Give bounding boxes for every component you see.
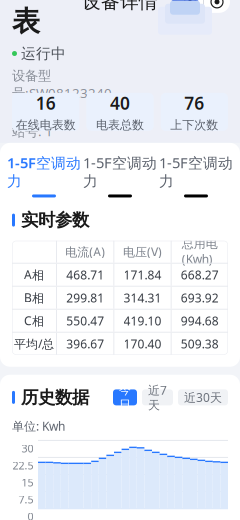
staticText: 上下次数 [170,117,218,132]
staticText: 三相电表 [12,0,96,38]
staticText: 7.5 [18,492,33,507]
staticText: 实时参数 [21,209,89,231]
button[interactable]: 16 [12,93,79,131]
staticText: 299.81 [66,290,104,306]
button[interactable]: 1-5F空调动力 [158,153,234,197]
staticText: 单位: Kwh [12,418,65,434]
staticText: B相 [24,290,44,306]
staticText: 40 [110,91,130,114]
staticText: 171.84 [123,267,161,283]
staticText: 总用电(Kwh) [182,236,218,267]
staticText: 15 [21,475,33,490]
button[interactable]: 近7天 [142,389,173,405]
staticText: 76 [184,91,204,114]
button[interactable]: 近30天 [178,389,228,405]
button[interactable]: 今日 [113,389,137,405]
staticText: 668.27 [181,267,219,283]
staticText: 设备详情 [82,0,158,13]
staticText: 994.68 [181,313,219,329]
staticText: 站号: 1 [12,122,53,140]
staticText: 运行中 [21,44,66,62]
button[interactable]: 1-5F空调动力 [82,153,158,197]
staticText: 历史数据 [21,387,89,408]
staticText: 22.5 [12,458,33,473]
staticText: 693.92 [181,290,219,306]
staticText: 16 [36,91,56,114]
staticText: 509.38 [181,336,219,352]
staticText: A相 [24,267,44,283]
button[interactable]: 40 [86,93,154,131]
button[interactable]: 1-5F空调动力 [6,153,82,197]
staticText: 419.10 [123,313,161,329]
staticText: C相 [24,313,44,329]
button[interactable]: 76 [161,93,228,131]
staticText: 电表总数 [96,117,144,132]
staticText: 550.47 [66,313,104,329]
staticText: 电流(A) [65,244,105,260]
staticText: 平均/总 [14,336,54,352]
staticText: 在线电表数 [16,117,76,132]
staticText: 近7天 [148,382,167,413]
staticText: 设备型号:SW08123240DFA [12,67,112,119]
staticText: 170.40 [123,336,161,352]
staticText: 1-5F空调动力 [7,153,81,190]
staticText: 468.71 [66,267,104,283]
staticText: 今日 [119,383,131,412]
button[interactable]: 更多 [177,0,203,13]
staticText: 1-5F空调动力 [159,153,233,190]
staticText: 1-5F空调动力 [83,153,157,190]
staticText: 314.31 [123,290,161,306]
staticText: 电压(V) [123,244,162,260]
staticText: 396.67 [66,336,104,352]
staticText: 30 [21,441,33,456]
button[interactable]: 定位 [204,0,230,13]
staticText: 近30天 [184,389,222,405]
staticText: 0 [27,509,33,520]
